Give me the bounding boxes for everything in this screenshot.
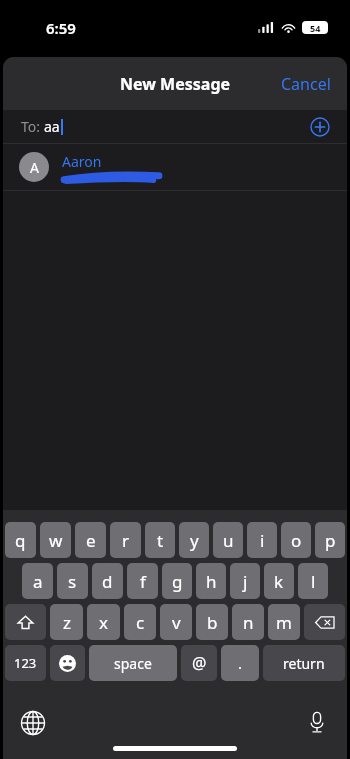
- button[interactable]: j: [230, 563, 260, 599]
- staticText: w: [49, 529, 63, 552]
- staticText: n: [243, 611, 254, 634]
- staticText: k: [274, 570, 284, 593]
- staticText: To:: [21, 117, 44, 136]
- staticText: e: [86, 529, 96, 552]
- staticText: a: [33, 570, 43, 593]
- button[interactable]: h: [196, 563, 226, 599]
- button[interactable]: 123: [5, 645, 46, 681]
- staticText: space: [114, 654, 152, 673]
- button[interactable]: k: [264, 563, 294, 599]
- button[interactable]: q: [5, 522, 36, 558]
- staticText: Aaron: [62, 152, 102, 171]
- staticText: i: [260, 529, 265, 552]
- staticText: s: [68, 570, 77, 593]
- staticText: @: [192, 652, 207, 674]
- staticText: 54: [310, 22, 321, 34]
- button[interactable]: Dictation: [305, 710, 329, 734]
- button[interactable]: n: [232, 604, 264, 640]
- staticText: z: [63, 611, 71, 634]
- staticText: Cancel: [281, 73, 331, 95]
- button[interactable]: Cancel: [265, 63, 347, 105]
- button[interactable]: u: [213, 522, 243, 558]
- button[interactable]: t: [145, 522, 175, 558]
- button[interactable]: d: [92, 563, 123, 599]
- button[interactable]: s: [57, 563, 88, 599]
- button[interactable]: o: [281, 522, 311, 558]
- button[interactable]: Shift: [5, 604, 46, 640]
- button[interactable]: f: [127, 563, 158, 599]
- button[interactable]: p: [315, 522, 345, 558]
- staticText: aa: [44, 117, 60, 136]
- staticText: l: [311, 570, 316, 593]
- button[interactable]: i: [247, 522, 277, 558]
- staticText: u: [223, 529, 234, 552]
- staticText: q: [15, 529, 26, 552]
- staticText: b: [207, 611, 218, 634]
- staticText: return: [283, 654, 325, 673]
- button[interactable]: a: [22, 563, 53, 599]
- button[interactable]: b: [196, 604, 228, 640]
- button[interactable]: l: [298, 563, 328, 599]
- button[interactable]: m: [268, 604, 300, 640]
- staticText: g: [172, 570, 183, 593]
- staticText: d: [102, 570, 113, 593]
- button[interactable]: c: [124, 604, 156, 640]
- staticText: c: [136, 611, 145, 634]
- staticText: p: [325, 529, 336, 552]
- staticText: r: [122, 529, 130, 552]
- button[interactable]: Emoji: [50, 645, 85, 681]
- button[interactable]: y: [179, 522, 209, 558]
- staticText: o: [291, 529, 302, 552]
- staticText: t: [157, 529, 164, 552]
- staticText: j: [243, 570, 248, 593]
- button[interactable]: r: [110, 522, 141, 558]
- button[interactable]: Backspace: [304, 604, 345, 640]
- button[interactable]: z: [50, 604, 83, 640]
- button[interactable]: e: [75, 522, 106, 558]
- button[interactable]: space: [89, 645, 177, 681]
- staticText: f: [140, 570, 146, 593]
- staticText: 6:59: [46, 18, 76, 38]
- staticText: A: [30, 158, 39, 177]
- staticText: 123: [14, 654, 37, 672]
- staticText: .: [238, 653, 243, 673]
- button[interactable]: v: [160, 604, 192, 640]
- staticText: y: [190, 529, 199, 552]
- button[interactable]: return: [263, 645, 345, 681]
- staticText: New Message: [120, 73, 231, 95]
- button[interactable]: Add contact: [310, 117, 330, 137]
- button[interactable]: A: [3, 144, 347, 190]
- button[interactable]: Change keyboard: [20, 710, 46, 736]
- button[interactable]: x: [87, 604, 120, 640]
- button[interactable]: @: [181, 645, 217, 681]
- staticText: m: [276, 611, 292, 634]
- staticText: h: [206, 570, 217, 593]
- staticText: x: [99, 611, 108, 634]
- button[interactable]: w: [40, 522, 71, 558]
- staticText: v: [172, 611, 181, 634]
- button[interactable]: g: [162, 563, 192, 599]
- button[interactable]: .: [221, 645, 259, 681]
